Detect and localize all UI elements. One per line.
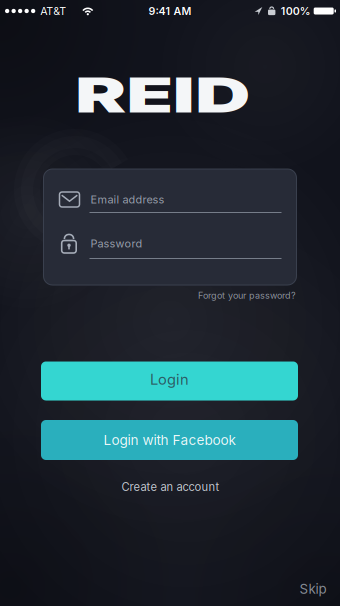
- staticText: Password: [90, 237, 142, 250]
- staticText: Skip: [299, 581, 326, 597]
- button[interactable]: Login: [41, 361, 298, 400]
- staticText: REID: [108, 66, 218, 124]
- staticText: 100%: [281, 4, 311, 17]
- button[interactable]: Login with Facebook: [41, 420, 298, 460]
- staticText: Forgot your password?: [198, 290, 296, 301]
- staticText: Email address: [90, 193, 164, 206]
- staticText: AT&T: [40, 4, 66, 17]
- staticText: Create an account: [121, 480, 219, 494]
- staticText: Login with Facebook: [103, 432, 235, 448]
- staticText: Login: [150, 371, 189, 388]
- button[interactable]: Create an account: [121, 480, 219, 494]
- staticText: 9:41 AM: [148, 4, 191, 17]
- button[interactable]: Password: [43, 230, 296, 260]
- button[interactable]: Forgot your password?: [198, 290, 296, 301]
- button[interactable]: Email address: [43, 184, 296, 214]
- button[interactable]: Skip: [299, 581, 326, 597]
